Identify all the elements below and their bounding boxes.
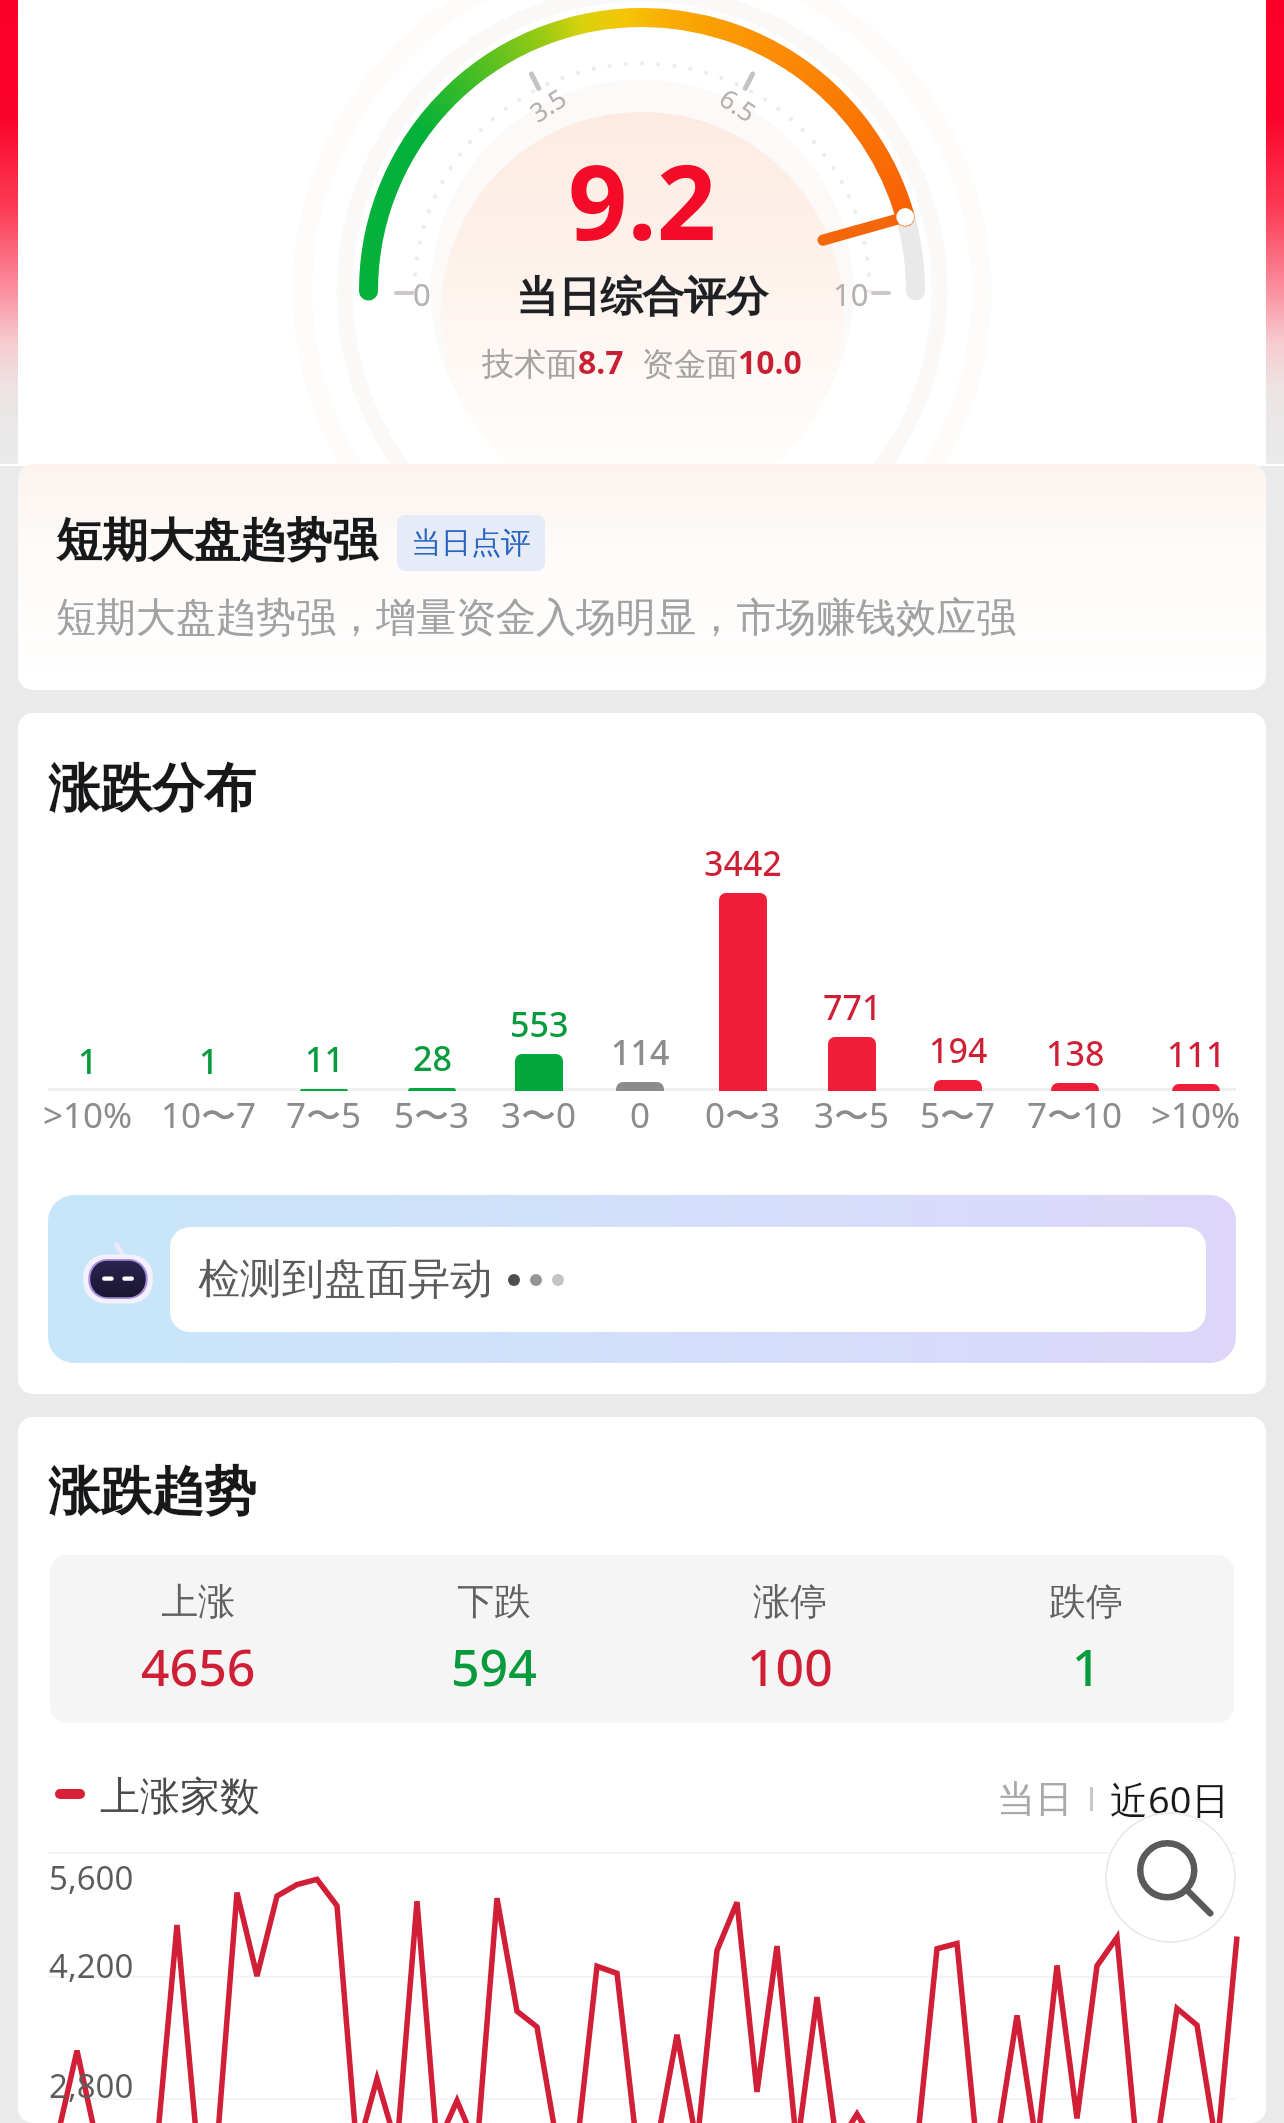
button[interactable]: Search <box>1105 1812 1236 1943</box>
staticText: 11 <box>305 1036 344 1082</box>
staticText: 111 <box>1167 1031 1226 1077</box>
staticText: 当日综合评分 <box>516 271 768 324</box>
staticText: 1 <box>78 1038 98 1084</box>
staticText: 28 <box>413 1035 452 1081</box>
staticText: 5〜3 <box>394 1091 470 1139</box>
staticText: 4,200 <box>49 1943 134 1988</box>
staticText: 10.0 <box>738 340 802 384</box>
staticText: 涨跌分布 <box>48 756 256 822</box>
button[interactable]: 跌停 <box>938 1555 1234 1723</box>
button[interactable]: 下跌 <box>346 1555 642 1723</box>
staticText: 1 <box>199 1038 219 1084</box>
staticText: 当日点评 <box>411 524 531 562</box>
staticText: 0 <box>630 1091 651 1139</box>
staticText: 涨跌趋势 <box>48 1459 256 1525</box>
button[interactable]: 上涨 <box>50 1555 346 1723</box>
staticText: 上涨 <box>161 1578 235 1625</box>
staticText: 9.2 <box>568 129 717 271</box>
staticText: 771 <box>823 984 882 1030</box>
staticText: 0〜3 <box>705 1091 781 1139</box>
staticText: 1 <box>1072 1633 1101 1701</box>
staticText: 短期大盘趋势强 <box>56 512 378 570</box>
button[interactable]: 检测到盘面异动 <box>48 1195 1236 1363</box>
staticText: 跌停 <box>1049 1578 1123 1625</box>
staticText: 7〜5 <box>286 1091 362 1139</box>
staticText: >10% <box>43 1091 133 1139</box>
staticText: 近60日 <box>1110 1773 1230 1825</box>
button[interactable]: 涨停 <box>642 1555 938 1723</box>
staticText: 100 <box>747 1633 833 1701</box>
button[interactable]: 当日 <box>997 1775 1073 1823</box>
staticText: 4656 <box>141 1633 256 1701</box>
staticText: 7〜10 <box>1027 1091 1123 1139</box>
staticText: 技术面 <box>482 344 578 384</box>
staticText: 6.5 <box>713 80 764 129</box>
staticText: 553 <box>510 1001 569 1047</box>
staticText: 0 <box>413 273 431 315</box>
staticText: 当日 <box>997 1775 1073 1823</box>
button[interactable]: 近60日 <box>1110 1773 1230 1825</box>
staticText: 3〜5 <box>814 1091 890 1139</box>
staticText: 资金面 <box>642 344 738 384</box>
staticText: 10 <box>833 273 869 315</box>
staticText: 检测到盘面异动 <box>198 1253 492 1306</box>
staticText: 194 <box>929 1027 988 1073</box>
staticText: 短期大盘趋势强，增量资金入场明显，市场赚钱效应强 <box>56 592 1016 642</box>
staticText: 594 <box>451 1633 537 1701</box>
staticText: 8.7 <box>578 340 624 384</box>
staticText: 涨停 <box>753 1578 827 1625</box>
staticText: 3〜0 <box>501 1091 577 1139</box>
staticText: 2,800 <box>49 2063 134 2108</box>
staticText: 5〜7 <box>920 1091 996 1139</box>
staticText: >10% <box>1151 1091 1241 1139</box>
button[interactable]: 短期大盘趋势强 <box>18 464 1266 690</box>
staticText: 114 <box>611 1029 670 1075</box>
button[interactable]: 当日综合评分 9.2 <box>0 0 1284 466</box>
staticText: 138 <box>1046 1030 1105 1076</box>
staticText: 下跌 <box>457 1578 531 1625</box>
staticText: 3442 <box>704 840 782 886</box>
staticText: 3.5 <box>522 80 573 129</box>
staticText: 10〜7 <box>161 1091 257 1139</box>
staticText: 上涨家数 <box>100 1771 260 1821</box>
staticText: 5,600 <box>49 1855 134 1900</box>
